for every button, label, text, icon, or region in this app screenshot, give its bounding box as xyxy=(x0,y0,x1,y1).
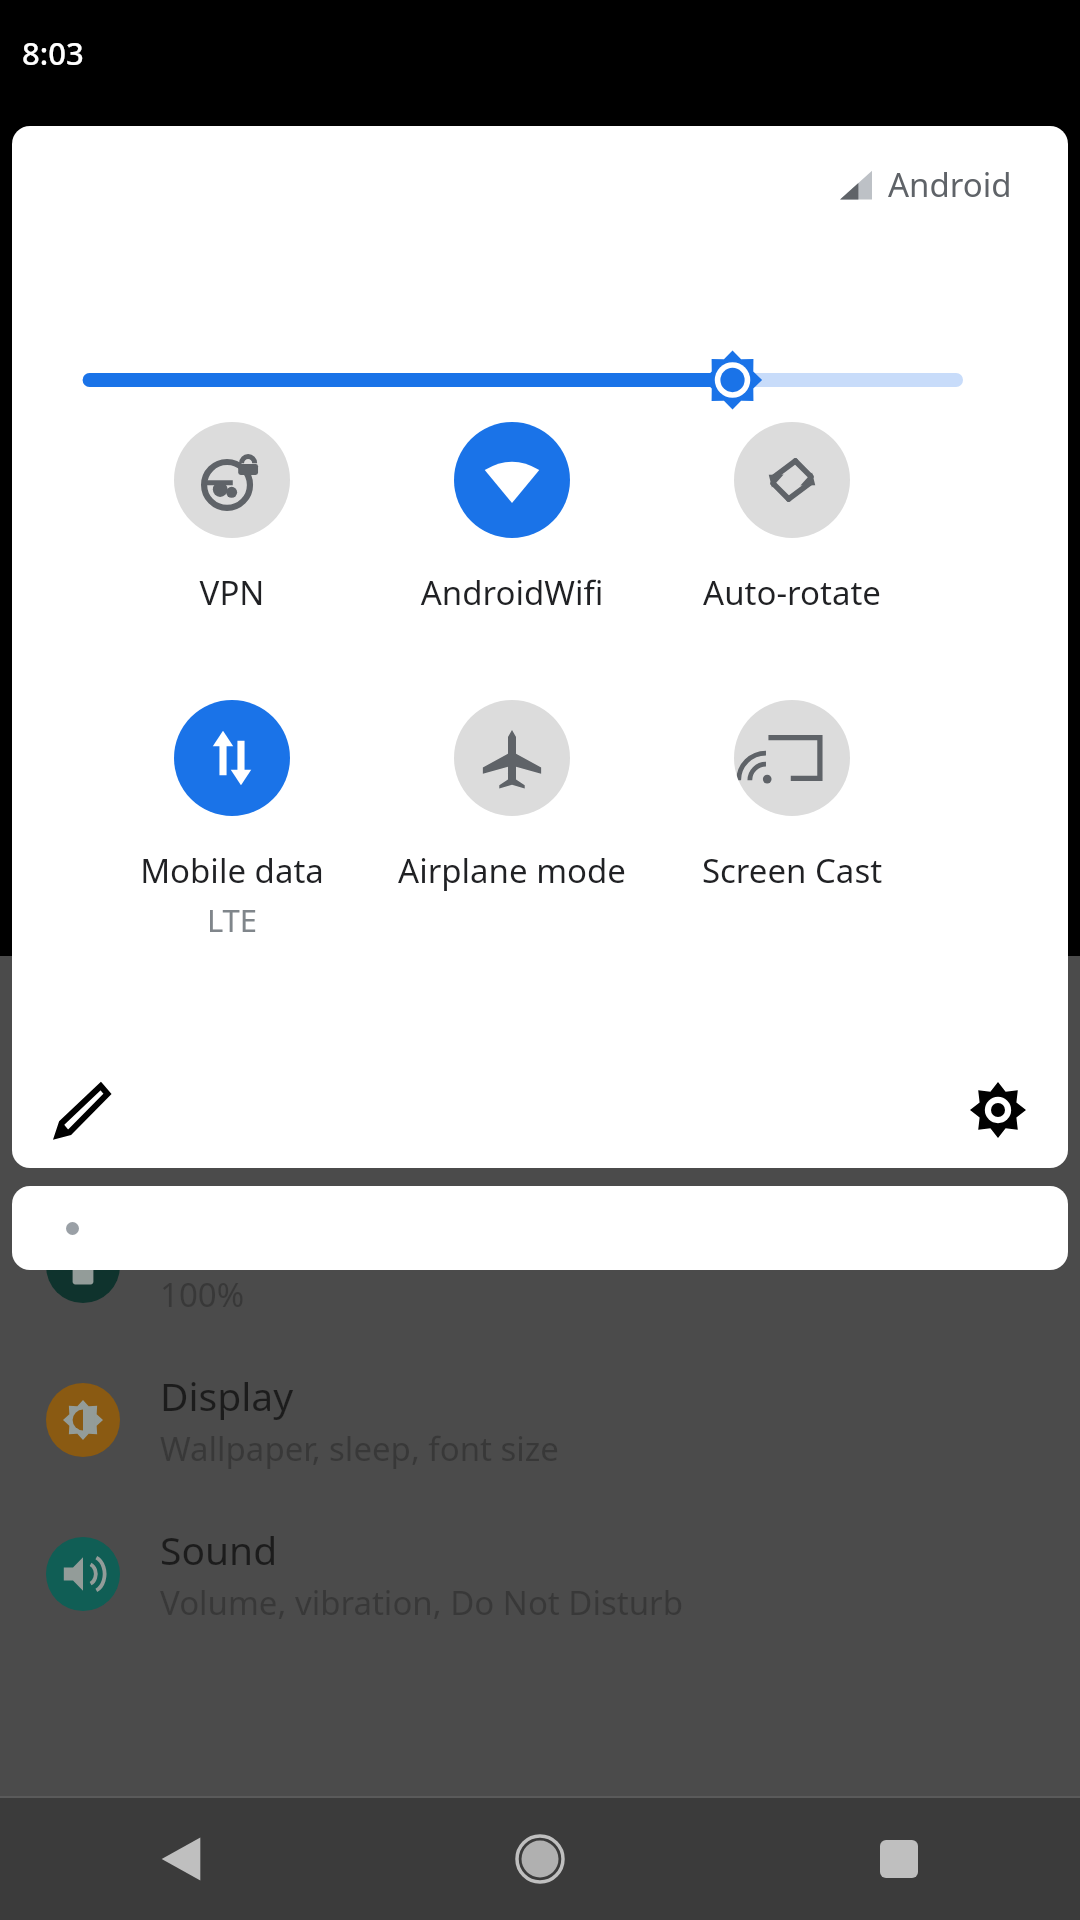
staticText: AndroidWifi xyxy=(334,570,690,615)
staticText: Sound xyxy=(160,1523,278,1576)
button[interactable]: Recent apps xyxy=(838,1798,960,1920)
button[interactable]: Brightness xyxy=(12,322,1068,438)
staticText: Airplane mode xyxy=(334,848,690,893)
button[interactable]: AndroidWifi xyxy=(334,422,690,615)
button[interactable]: Mobile data xyxy=(54,700,410,941)
button[interactable]: Airplane mode xyxy=(334,700,690,893)
staticText: 100% xyxy=(160,1272,245,1317)
staticText: Android xyxy=(888,162,1012,207)
staticText: VPN xyxy=(54,570,410,615)
button[interactable]: Home xyxy=(479,1798,601,1920)
staticText: Screen Cast xyxy=(614,848,970,893)
staticText: LTE xyxy=(54,899,410,941)
button[interactable] xyxy=(12,1186,1068,1270)
staticText: Auto-rotate xyxy=(614,570,970,615)
button[interactable]: Settings xyxy=(950,1062,1046,1158)
button[interactable]: Auto-rotate xyxy=(614,422,970,615)
staticText: Display xyxy=(160,1369,294,1422)
staticText: Mobile data xyxy=(54,848,410,893)
staticText: Wallpaper, sleep, font size xyxy=(160,1426,559,1471)
staticText: 8:03 xyxy=(22,32,84,74)
button[interactable]: Edit tiles xyxy=(34,1062,130,1158)
button[interactable]: Back xyxy=(120,1798,242,1920)
button[interactable]: Display xyxy=(46,1350,1080,1490)
button[interactable]: Sound xyxy=(46,1504,1080,1644)
button[interactable]: Battery xyxy=(46,1196,1080,1336)
button[interactable]: VPN xyxy=(54,422,410,615)
button[interactable]: Screen Cast xyxy=(614,700,970,893)
staticText: Volume, vibration, Do Not Disturb xyxy=(160,1580,683,1625)
